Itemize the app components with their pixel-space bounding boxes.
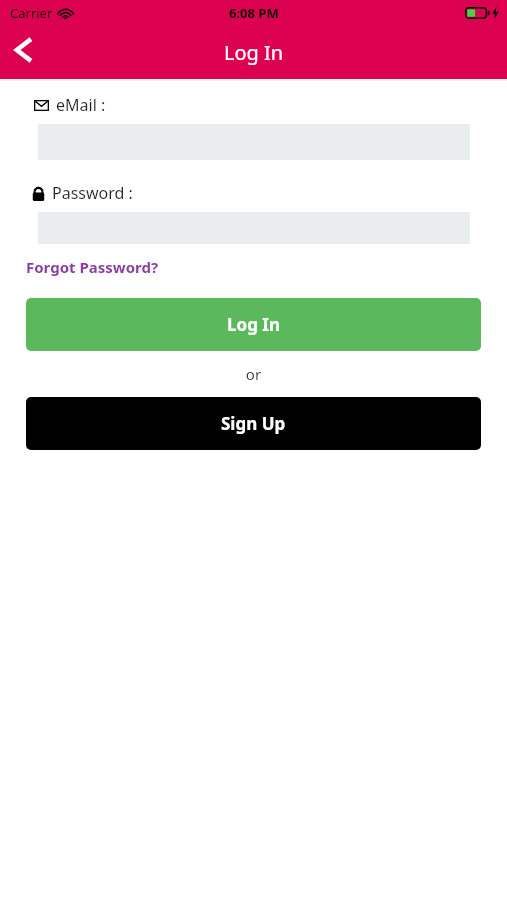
button[interactable]: Log In (26, 298, 481, 351)
staticText: Forgot Password? (26, 257, 159, 277)
staticText: Log In (227, 313, 280, 336)
button[interactable]: Forgot Password? (26, 257, 159, 277)
staticText: Password : (52, 182, 133, 204)
staticText: Sign Up (221, 412, 286, 435)
staticText: Log In (224, 39, 284, 66)
button[interactable]: Sign Up (26, 397, 481, 450)
staticText: Carrier (10, 4, 53, 22)
staticText: 6:08 PM (229, 4, 279, 22)
button[interactable]: Back (0, 27, 46, 73)
staticText: eMail : (56, 94, 106, 116)
staticText: or (0, 364, 507, 384)
